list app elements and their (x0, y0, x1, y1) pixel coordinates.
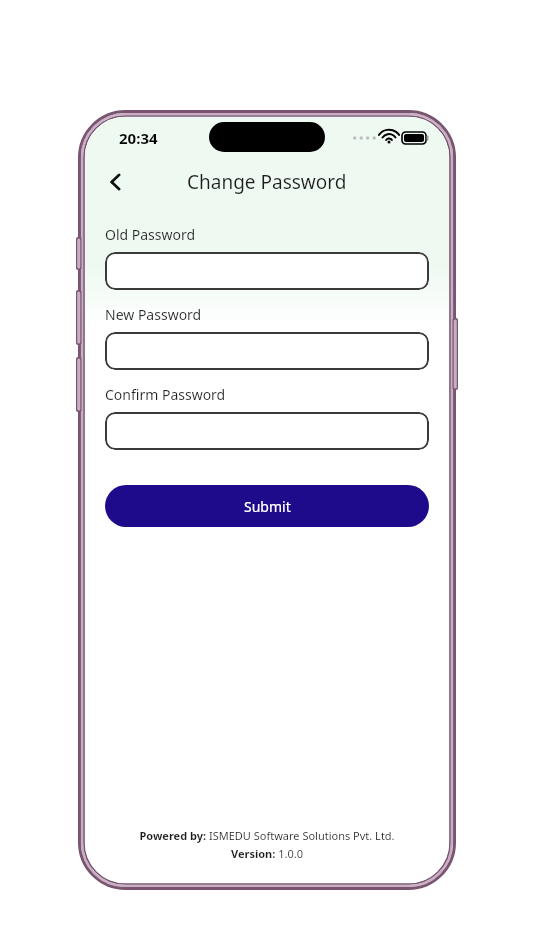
staticText: Powered by: ISMEDU Software Solutions Pv… (139, 828, 395, 843)
staticText: Old Password (105, 225, 196, 244)
button[interactable]: Confirm Password (105, 412, 429, 450)
staticText: Submit (244, 497, 291, 516)
button[interactable]: New Password (105, 332, 429, 370)
staticText: Version: 1.0.0 (231, 846, 303, 861)
button[interactable]: Submit (105, 485, 429, 527)
button[interactable]: Back (95, 161, 137, 203)
staticText: Change Password (187, 169, 347, 195)
staticText: Confirm Password (105, 385, 226, 404)
button[interactable]: Old Password (105, 252, 429, 290)
staticText: 20:34 (119, 128, 158, 148)
staticText: New Password (105, 305, 202, 324)
